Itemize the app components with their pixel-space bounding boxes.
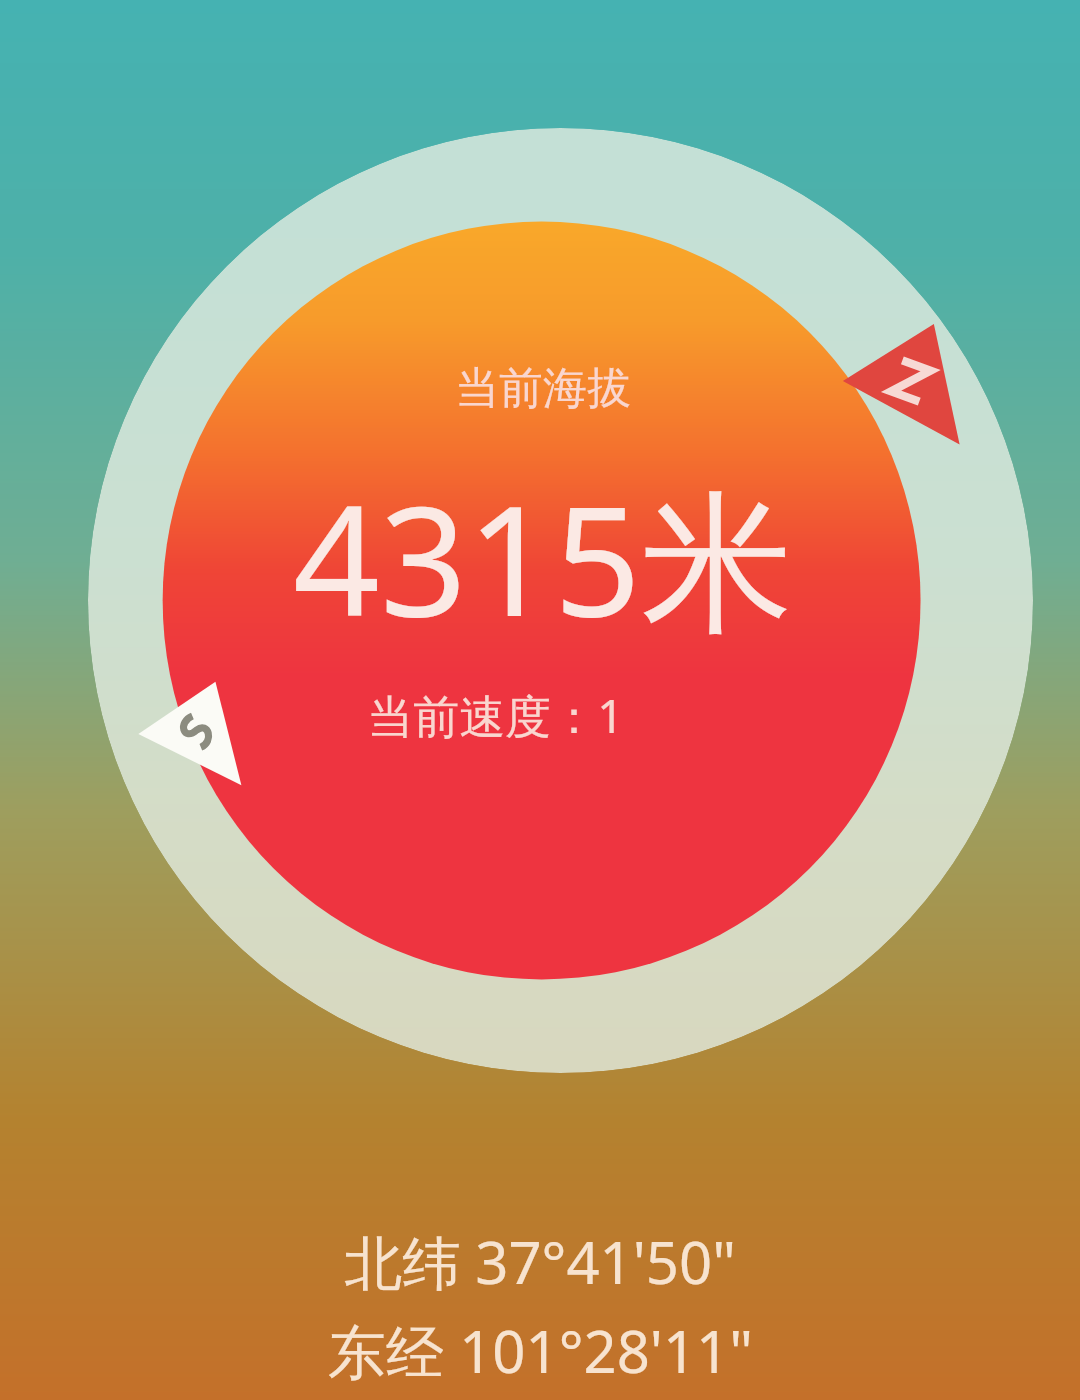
staticText: 当前海拔 [455, 361, 631, 416]
staticText: 东经 101°28'11" [328, 1311, 753, 1390]
staticText: 当前速度：1 [367, 684, 624, 747]
staticText: 北纬 37°41'50" [344, 1222, 736, 1301]
button[interactable]: Altitude dial [88, 128, 1033, 1073]
staticText: 4315米 [293, 454, 793, 662]
